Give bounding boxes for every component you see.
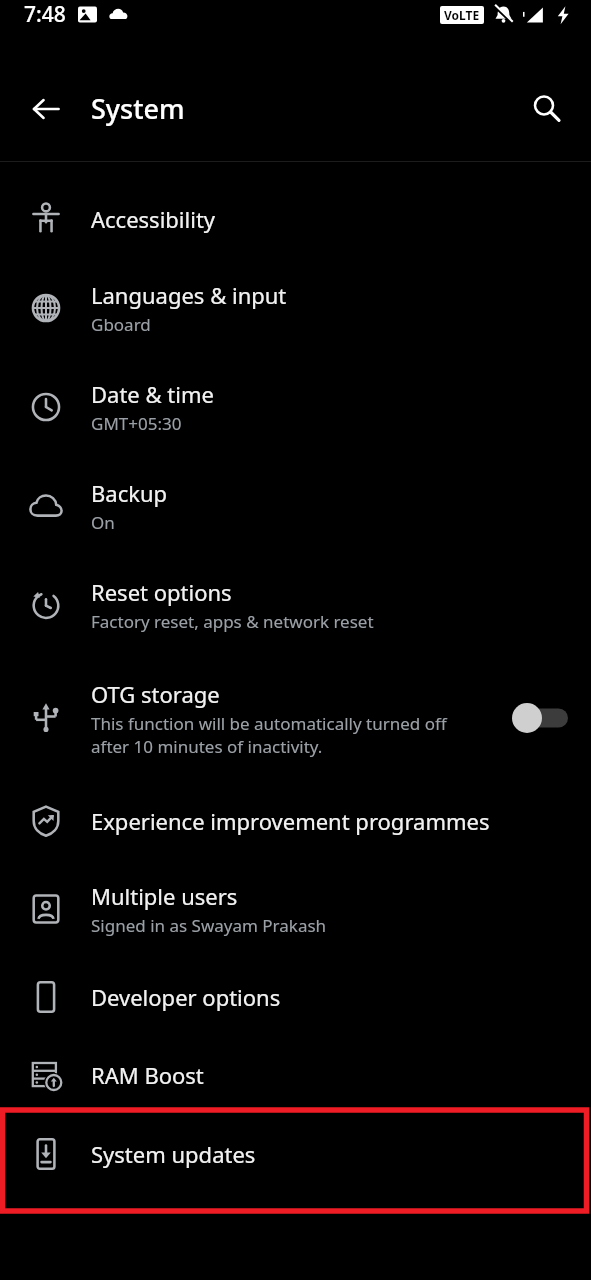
staticText: System (91, 90, 185, 127)
button[interactable]: Accessibility (0, 180, 591, 258)
button[interactable]: Reset options (0, 555, 591, 654)
button[interactable]: System updates (0, 1114, 591, 1194)
button[interactable]: Search (503, 56, 591, 161)
staticText: Reset options (91, 577, 232, 607)
staticText: System updates (91, 1139, 256, 1169)
button[interactable]: Date & time (0, 357, 591, 456)
button[interactable]: Experience improvement programmes (0, 782, 591, 859)
button[interactable]: OTG storage toggle (493, 694, 585, 742)
staticText: 7:48 (24, 0, 66, 29)
staticText: Gboard (91, 313, 151, 336)
staticText: Languages & input (91, 280, 287, 310)
staticText: Accessibility (91, 204, 216, 234)
staticText: after 10 minutes of inactivity. (91, 735, 323, 758)
staticText: This function will be automatically turn… (91, 712, 447, 735)
button[interactable]: Backup (0, 456, 591, 555)
staticText: RAM Boost (91, 1060, 204, 1090)
staticText: Factory reset, apps & network reset (91, 610, 374, 633)
staticText: OTG storage (91, 679, 220, 709)
staticText: On (91, 511, 115, 534)
button[interactable]: Developer options (0, 958, 591, 1036)
staticText: Backup (91, 478, 168, 508)
staticText: Experience improvement programmes (91, 806, 490, 836)
staticText: GMT+05:30 (91, 412, 182, 435)
staticText: VoLTE (444, 7, 480, 23)
button[interactable]: Back (0, 56, 91, 161)
staticText: Signed in as Swayam Prakash (91, 914, 327, 937)
button[interactable]: OTG storage (0, 654, 591, 782)
button[interactable]: Languages & input (0, 258, 591, 357)
staticText: Date & time (91, 379, 214, 409)
button[interactable]: Multiple users (0, 859, 591, 958)
staticText: Multiple users (91, 881, 238, 911)
staticText: Developer options (91, 982, 281, 1012)
button[interactable]: RAM Boost (0, 1036, 591, 1114)
